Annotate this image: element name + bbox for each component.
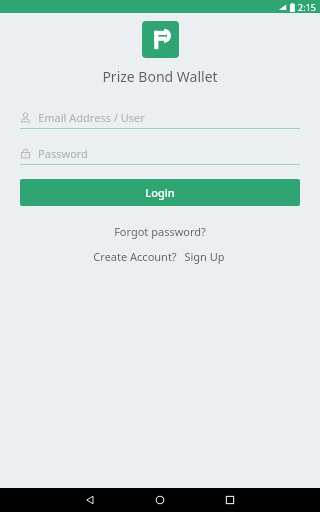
button[interactable]: Forgot password? — [106, 222, 214, 241]
staticText: Password — [38, 146, 88, 161]
staticText: Sign Up — [184, 249, 225, 264]
button[interactable]: Recent apps — [218, 488, 242, 512]
staticText: 2:15 — [298, 1, 316, 13]
staticText: Prize Bond Wallet — [102, 67, 218, 86]
button[interactable]: Password — [20, 144, 300, 165]
button[interactable]: Sign Up — [182, 247, 227, 266]
button[interactable]: Email Address or User — [20, 108, 300, 129]
button[interactable]: Home — [148, 488, 172, 512]
button[interactable]: Back — [78, 488, 102, 512]
staticText: Email Address / User — [38, 110, 145, 125]
staticText: Login — [145, 185, 175, 200]
staticText: Create Account? — [93, 249, 177, 264]
staticText: Forgot password? — [114, 224, 206, 239]
button[interactable]: Login — [20, 179, 300, 206]
